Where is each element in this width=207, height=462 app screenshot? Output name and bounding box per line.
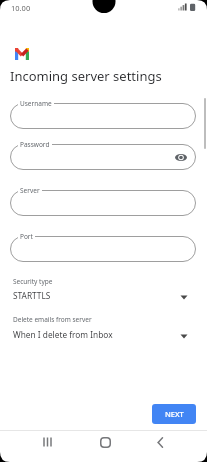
staticText: Port xyxy=(20,232,33,241)
staticText: NEXT xyxy=(165,409,184,419)
button[interactable] xyxy=(10,144,196,170)
button[interactable]: NEXT xyxy=(152,404,196,424)
button[interactable] xyxy=(148,430,172,454)
staticText: Password xyxy=(20,140,50,149)
button[interactable] xyxy=(0,312,207,344)
staticText: Delete emails from server xyxy=(13,315,92,324)
staticText: STARTTLS xyxy=(13,290,51,301)
staticText: Username xyxy=(20,99,52,108)
button[interactable] xyxy=(0,272,207,304)
button[interactable] xyxy=(93,430,117,454)
staticText: 10.00 xyxy=(11,3,31,13)
staticText: Server xyxy=(20,186,40,195)
button[interactable] xyxy=(36,430,60,454)
button[interactable] xyxy=(10,190,196,216)
staticText: When I delete from Inbox xyxy=(13,329,113,340)
staticText: Security type xyxy=(13,277,53,286)
button[interactable] xyxy=(10,236,196,262)
button[interactable] xyxy=(10,103,196,129)
staticText: Incoming server settings xyxy=(10,67,162,85)
